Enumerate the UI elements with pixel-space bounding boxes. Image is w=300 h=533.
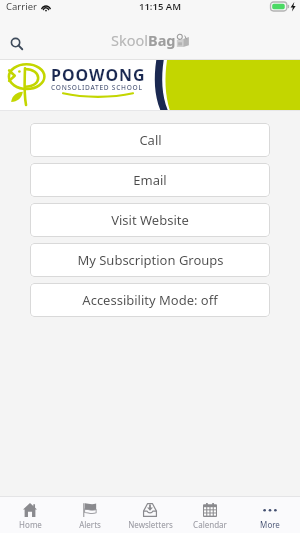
staticText: Skool — [111, 30, 148, 50]
button[interactable]: Email — [30, 163, 270, 197]
staticText: More — [260, 519, 280, 530]
button[interactable]: Home — [0, 497, 60, 533]
button[interactable]: Search — [2, 29, 31, 58]
button[interactable]: My Subscription Groups — [30, 243, 270, 277]
button[interactable]: Alerts — [60, 497, 120, 533]
staticText: Call — [139, 131, 162, 149]
button[interactable]: Newsletters — [120, 497, 180, 533]
staticText: Carrier — [6, 0, 37, 13]
button[interactable]: Call — [30, 123, 270, 157]
staticText: CONSOLIDATED SCHOOL — [51, 83, 143, 92]
button[interactable]: Visit Website — [30, 203, 270, 237]
staticText: Alerts — [79, 519, 101, 530]
button[interactable]: Accessibility Mode: off — [30, 283, 270, 317]
staticText: Bag — [148, 30, 176, 50]
button[interactable]: More — [240, 497, 300, 533]
staticText: Visit Website — [111, 211, 189, 229]
staticText: My Subscription Groups — [77, 251, 224, 269]
button[interactable]: Calendar — [180, 497, 240, 533]
staticText: Accessibility Mode: off — [82, 291, 218, 309]
staticText: Email — [133, 171, 167, 189]
staticText: POOWONG — [51, 64, 146, 86]
staticText: 11:15 AM — [139, 0, 182, 13]
staticText: Home — [19, 519, 42, 530]
staticText: Calendar — [193, 519, 227, 530]
staticText: Newsletters — [128, 519, 173, 530]
